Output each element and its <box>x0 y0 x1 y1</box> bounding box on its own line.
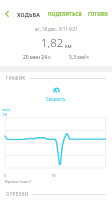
staticText: вс, 18 дек., 9:11-9:31 <box>35 26 78 32</box>
button[interactable]: Back <box>0 7 14 21</box>
staticText: ГОТОВО <box>88 11 108 17</box>
staticText: ХОДЬБА <box>17 11 41 18</box>
staticText: 0 <box>4 173 7 178</box>
staticText: ПОДЕЛИТЬСЯ <box>48 11 82 17</box>
staticText: км/ч <box>2 107 11 112</box>
staticText: 20 мин 24 с <box>23 54 51 61</box>
staticText: 10 <box>51 173 56 178</box>
staticText: 18 <box>2 112 7 118</box>
staticText: ГРАФИК <box>6 75 26 81</box>
staticText: Время (мин.) <box>5 179 32 185</box>
button[interactable]: ПОДЕЛИТЬСЯ <box>47 11 83 17</box>
button[interactable]: Скорость <box>0 84 112 102</box>
staticText: км <box>65 43 72 50</box>
staticText: Скорость <box>46 96 66 102</box>
staticText: ОТРЕЗКИ <box>6 191 29 197</box>
button[interactable]: ГОТОВО <box>87 11 109 17</box>
staticText: 1,82 <box>41 35 64 51</box>
staticText: 5,3 км/ч <box>69 54 89 61</box>
